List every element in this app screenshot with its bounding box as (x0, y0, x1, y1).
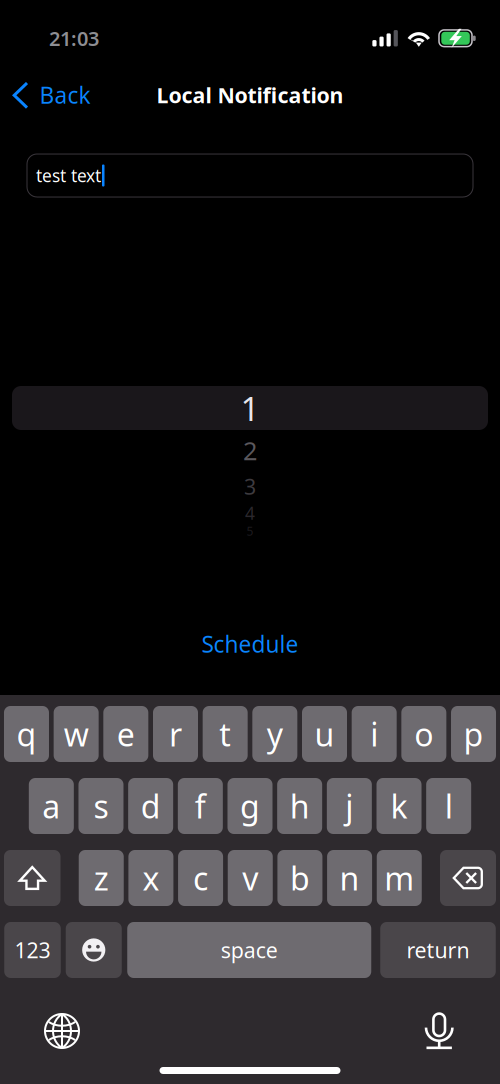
staticText: z (94, 857, 109, 899)
button[interactable]: v (228, 850, 273, 906)
staticText: l (445, 785, 453, 827)
button[interactable]: b (277, 850, 322, 906)
staticText: r (169, 713, 182, 755)
button[interactable]: t (203, 706, 248, 762)
button[interactable]: return (380, 922, 496, 978)
staticText: v (242, 857, 258, 899)
button[interactable]: Delete (440, 850, 496, 906)
staticText: o (414, 713, 433, 755)
staticText: p (463, 713, 483, 755)
staticText: 5 (246, 523, 253, 539)
staticText: e (117, 713, 135, 755)
button[interactable]: q (4, 706, 49, 762)
staticText: d (141, 785, 161, 827)
staticText: x (142, 857, 159, 899)
button[interactable]: w (54, 706, 99, 762)
button[interactable]: r (153, 706, 198, 762)
staticText: a (42, 785, 60, 827)
staticText: i (370, 713, 378, 755)
button[interactable]: Emoji (66, 922, 122, 978)
button[interactable]: a (29, 778, 74, 834)
button[interactable]: c (178, 850, 223, 906)
staticText: 4 (245, 501, 255, 524)
button[interactable]: Shift (4, 850, 60, 906)
button[interactable]: n (327, 850, 372, 906)
staticText: h (290, 785, 310, 827)
button[interactable]: space (127, 922, 371, 978)
staticText: f (195, 785, 206, 827)
staticText: j (345, 785, 353, 827)
button[interactable]: l (426, 778, 471, 834)
button[interactable]: Back (0, 74, 90, 116)
staticText: w (64, 713, 89, 755)
staticText: 1 (240, 386, 259, 430)
button[interactable]: h (277, 778, 322, 834)
button[interactable]: d (128, 778, 173, 834)
staticText: 3 (244, 472, 256, 501)
button[interactable]: y (252, 706, 297, 762)
button[interactable]: j (327, 778, 372, 834)
staticText: 2 (243, 434, 257, 467)
staticText: 123 (14, 936, 50, 964)
staticText: u (314, 713, 334, 755)
staticText: space (221, 936, 278, 964)
staticText: k (390, 785, 407, 827)
button[interactable]: f (178, 778, 223, 834)
button[interactable]: e (103, 706, 148, 762)
staticText: g (240, 785, 260, 827)
staticText: y (267, 713, 283, 755)
staticText: Local Notification (156, 81, 343, 109)
button[interactable]: o (401, 706, 446, 762)
staticText: test text (36, 164, 101, 187)
button[interactable]: p (451, 706, 496, 762)
button[interactable]: z (79, 850, 124, 906)
staticText: s (93, 785, 108, 827)
staticText: m (384, 857, 414, 899)
button[interactable]: Dictation (412, 999, 467, 1063)
staticText: q (16, 713, 36, 755)
button[interactable]: Next keyboard (30, 999, 94, 1063)
staticText: n (340, 857, 360, 899)
button[interactable]: s (78, 778, 123, 834)
staticText: b (290, 857, 310, 899)
button[interactable]: Schedule (185, 621, 314, 667)
button[interactable]: k (376, 778, 421, 834)
button[interactable]: 123 (4, 922, 61, 978)
button[interactable]: i (352, 706, 397, 762)
button[interactable]: x (128, 850, 173, 906)
staticText: Schedule (201, 629, 298, 659)
staticText: t (219, 713, 231, 755)
staticText: 21:03 (49, 25, 99, 52)
button[interactable]: u (302, 706, 347, 762)
staticText: return (406, 936, 469, 964)
button[interactable]: m (377, 850, 422, 906)
button[interactable]: g (227, 778, 272, 834)
staticText: c (193, 857, 208, 899)
staticText: Back (39, 80, 90, 110)
